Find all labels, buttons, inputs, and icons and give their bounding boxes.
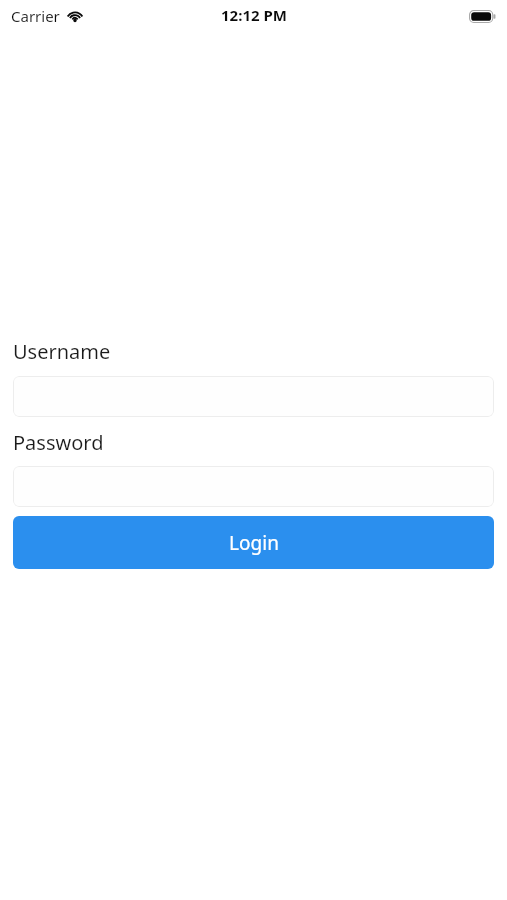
button[interactable]: Password input [13,466,494,507]
staticText: Username [13,338,111,365]
staticText: Carrier [11,6,60,26]
staticText: Password [13,429,104,456]
button[interactable]: Login [13,516,494,569]
staticText: Login [229,530,279,556]
button[interactable]: Username input [13,376,494,417]
staticText: 12:12 PM [221,5,287,25]
